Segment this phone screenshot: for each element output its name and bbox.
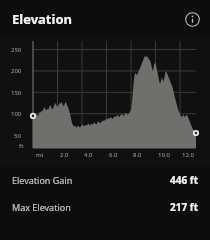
staticText: 446 ft [170,173,198,187]
staticText: Elevation [12,10,72,28]
staticText: 250 [11,46,22,54]
staticText: 2.0 [60,151,69,159]
staticText: 12.0 [182,151,194,159]
staticText: ft [19,142,24,150]
staticText: 150 [11,89,22,97]
staticText: 217 ft [170,200,198,214]
button[interactable]: Max Elevation [0,193,210,220]
staticText: Elevation Gain [12,174,73,186]
staticText: 200 [11,67,22,75]
staticText: 100 [11,110,22,118]
staticText: 4.0 [84,151,93,159]
staticText: 8.0 [133,151,142,159]
staticText: 50 [14,132,21,140]
staticText: 6.0 [109,151,118,159]
staticText: 10.0 [158,151,170,159]
button[interactable]: Elevation Gain [0,166,210,193]
staticText: Max Elevation [12,201,71,213]
staticText: mi [36,151,44,159]
button[interactable]: Info [181,8,203,30]
